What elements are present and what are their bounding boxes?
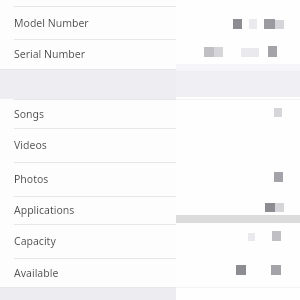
staticText: Songs <box>14 107 45 121</box>
staticText: Photos <box>14 172 49 186</box>
button[interactable]: Available <box>0 258 300 287</box>
button[interactable]: Videos <box>0 128 300 162</box>
button[interactable]: Serial Number <box>0 39 300 69</box>
staticText: Applications <box>14 203 75 217</box>
staticText: Videos <box>14 138 47 152</box>
button[interactable]: Photos <box>0 162 300 196</box>
button[interactable]: Model Number <box>0 6 300 39</box>
button[interactable]: Applications <box>0 196 300 224</box>
staticText: Available <box>14 266 59 280</box>
staticText: Model Number <box>14 16 89 30</box>
button[interactable]: Songs <box>0 99 300 128</box>
button[interactable]: Capacity <box>0 224 300 258</box>
staticText: Serial Number <box>14 47 86 61</box>
staticText: Capacity <box>14 234 56 248</box>
